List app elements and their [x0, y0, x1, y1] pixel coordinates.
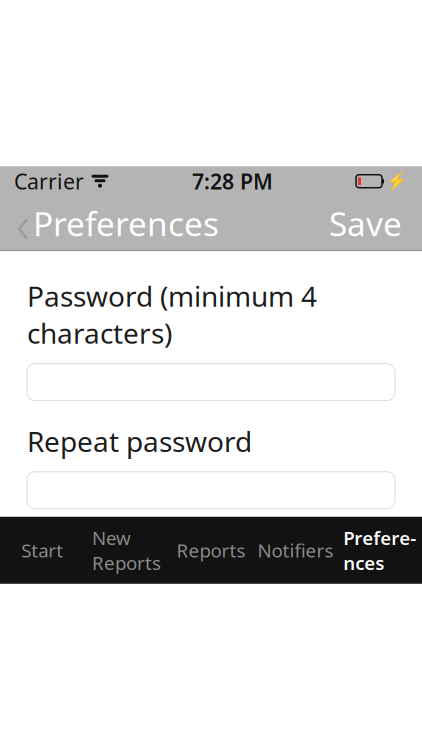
- button[interactable]: ‹: [6, 196, 229, 250]
- staticText: Preferences: [33, 201, 219, 245]
- button[interactable]: New Reports: [84, 517, 169, 584]
- staticText: 7:28 PM: [192, 167, 273, 195]
- button[interactable]: Save: [315, 196, 416, 250]
- button[interactable]: Reports: [169, 517, 253, 584]
- staticText: Password (minimum 4 characters): [27, 277, 317, 352]
- staticText: Carrier: [14, 167, 84, 195]
- staticText: Preferences: [343, 525, 416, 575]
- staticText: ‹: [16, 190, 29, 257]
- staticText: ⚡: [386, 171, 408, 191]
- staticText: Start: [21, 538, 63, 563]
- button[interactable]: Notifiers: [253, 517, 338, 584]
- button[interactable]: Start: [0, 517, 84, 584]
- staticText: Save: [329, 201, 402, 245]
- staticText: Notifiers: [257, 538, 333, 563]
- staticText: Reports: [176, 538, 245, 563]
- staticText: Repeat password: [27, 423, 252, 460]
- staticText: New Reports: [92, 525, 161, 575]
- button[interactable]: [27, 364, 395, 401]
- button[interactable]: Preferences: [338, 517, 422, 584]
- button[interactable]: [27, 472, 395, 509]
